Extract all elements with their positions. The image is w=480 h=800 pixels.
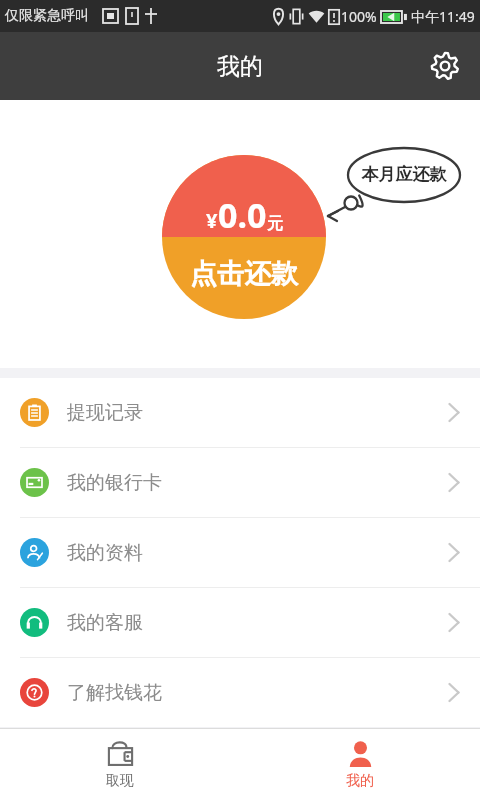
staticText: 取现 (106, 772, 134, 790)
staticText: ¥ (206, 207, 218, 234)
staticText: 提现记录 (67, 401, 143, 425)
button[interactable]: Settings (422, 43, 468, 89)
staticText: 元 (267, 214, 283, 234)
staticText: 中午11:49 (411, 7, 475, 26)
button[interactable]: 提现记录 (0, 378, 480, 447)
staticText: 我的 (217, 52, 263, 81)
staticText: 0.0 (218, 192, 267, 238)
staticText: 100% (341, 7, 377, 26)
button[interactable]: ¥ (162, 155, 326, 319)
button[interactable]: 了解找钱花 (0, 658, 480, 727)
button[interactable]: 我的客服 (0, 588, 480, 657)
staticText: 我的银行卡 (67, 471, 162, 495)
staticText: 我的资料 (67, 541, 143, 565)
staticText: 本月应还款 (348, 164, 460, 185)
button[interactable]: 我的资料 (0, 518, 480, 587)
staticText: 了解找钱花 (67, 681, 162, 705)
staticText: 我的客服 (67, 611, 143, 635)
button[interactable]: 我的银行卡 (0, 448, 480, 517)
button[interactable]: 取现 (0, 729, 240, 800)
staticText: 我的 (346, 772, 374, 790)
staticText: 仅限紧急呼叫 (5, 7, 89, 25)
staticText: 点击还款 (190, 257, 298, 291)
button[interactable]: 我的 (240, 729, 480, 800)
